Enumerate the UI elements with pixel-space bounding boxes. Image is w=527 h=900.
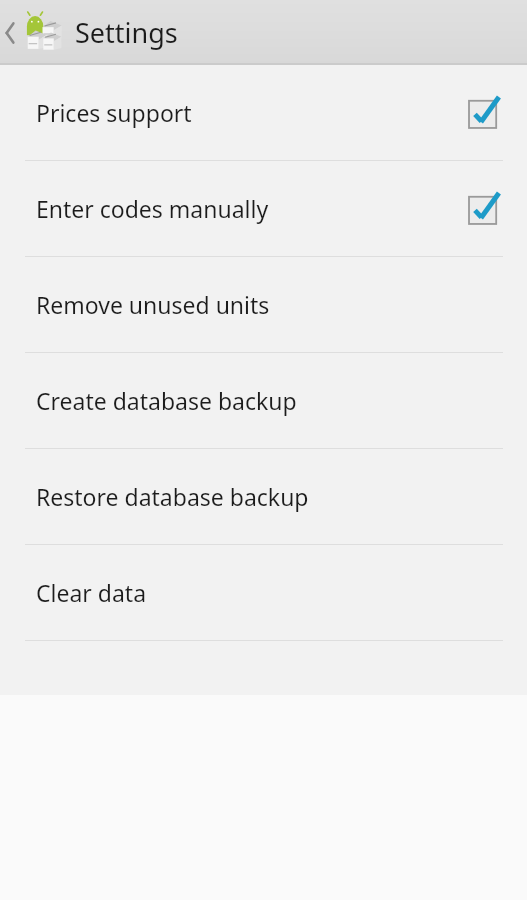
staticText: Enter codes manually [36, 193, 469, 224]
button[interactable]: Clear data [0, 545, 527, 640]
staticText: Settings [75, 14, 178, 51]
button[interactable]: Navigate up [0, 12, 67, 53]
button[interactable]: Remove unused units [0, 257, 527, 352]
button[interactable]: Enter codes manually [0, 161, 527, 256]
button[interactable]: Prices support [0, 65, 527, 160]
staticText: Restore database backup [36, 481, 503, 512]
staticText: Clear data [36, 577, 503, 608]
staticText: Create database backup [36, 385, 503, 416]
staticText: Prices support [36, 97, 469, 128]
button[interactable]: Checked [469, 96, 503, 130]
staticText: Remove unused units [36, 289, 503, 320]
button[interactable]: Restore database backup [0, 449, 527, 544]
button[interactable]: Checked [469, 192, 503, 226]
button[interactable]: Create database backup [0, 353, 527, 448]
